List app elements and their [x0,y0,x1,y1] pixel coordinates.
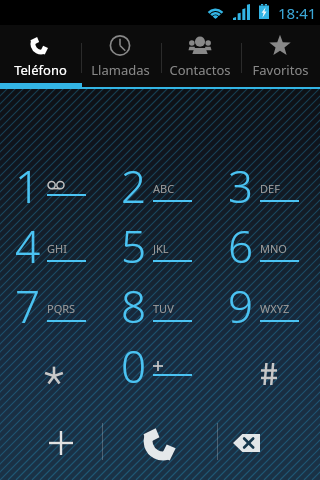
staticText: ABC [153,181,175,196]
button[interactable]: Delete [218,409,312,476]
staticText: JKL [153,241,169,256]
staticText: 9 [228,276,254,336]
staticText: TUV [153,301,174,316]
staticText: GHI [47,241,67,256]
staticText: MNO [260,241,287,256]
button[interactable] [213,340,320,400]
button[interactable]: 8 [106,280,213,340]
staticText: WXYZ [260,301,290,316]
staticText: 8 [121,276,147,336]
button[interactable]: 0 [106,340,213,400]
staticText: 4 [15,216,41,276]
staticText: 2 [121,156,147,216]
staticText: Favoritos [252,61,309,79]
button[interactable]: 2 [106,160,213,220]
button[interactable]: 9 [213,280,320,340]
button[interactable]: 6 [213,220,320,280]
button[interactable]: Contactos [160,25,240,89]
staticText: 1 [15,156,41,216]
staticText: 3 [228,156,254,216]
staticText: DEF [260,181,280,196]
staticText: 0 [121,336,147,396]
button[interactable]: Add to contacts [13,409,108,476]
button[interactable] [0,340,106,400]
button[interactable]: 7 [0,280,106,340]
button[interactable]: Favoritos [240,25,320,89]
button[interactable]: Llamadas [80,25,160,89]
button[interactable]: 3 [213,160,320,220]
button[interactable]: Teléfono [0,25,80,89]
staticText: 6 [228,216,254,276]
staticText: 18:41 [278,3,317,23]
staticText: PQRS [47,301,76,316]
staticText: Teléfono [14,61,67,79]
staticText: 7 [15,276,41,336]
button[interactable]: Call [104,409,217,476]
button[interactable]: 4 [0,220,106,280]
button[interactable]: 5 [106,220,213,280]
staticText: Llamadas [91,61,150,79]
staticText: 5 [121,216,147,276]
button[interactable]: 1 [0,160,106,220]
staticText: Contactos [169,61,231,79]
